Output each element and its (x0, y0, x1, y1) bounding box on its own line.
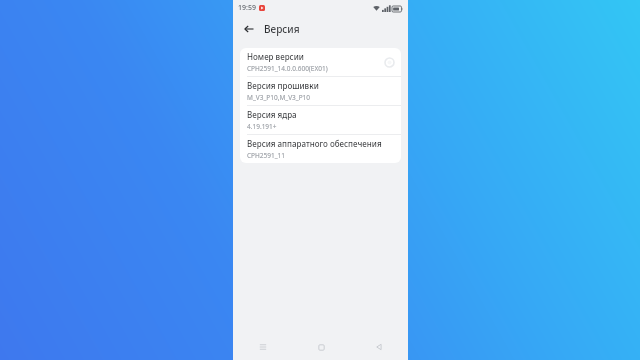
button[interactable]: Версия аппаратного обеспечения (240, 135, 401, 163)
staticText: Версия прошивки (247, 80, 319, 91)
staticText: M_V3_P10,M_V3_P10 (247, 93, 311, 102)
staticText: CPH2591_14.0.0.600(EX01) (247, 64, 328, 73)
button[interactable]: Главный экран (292, 334, 350, 360)
staticText: Номер версии (247, 51, 304, 62)
staticText: Версия аппаратного обеспечения (247, 138, 382, 149)
staticText: 19:59 (238, 3, 256, 13)
staticText: 4.19.191+ (247, 122, 277, 131)
button[interactable]: Назад (241, 21, 257, 37)
staticText: Версия (264, 22, 300, 36)
button[interactable]: Версия ядра (240, 106, 401, 134)
button[interactable]: Версия прошивки (240, 77, 401, 105)
button[interactable]: Назад (350, 334, 408, 360)
button[interactable]: Номер версии (240, 48, 401, 76)
staticText: Версия ядра (247, 109, 297, 120)
staticText: CPH2591_11 (247, 151, 286, 160)
